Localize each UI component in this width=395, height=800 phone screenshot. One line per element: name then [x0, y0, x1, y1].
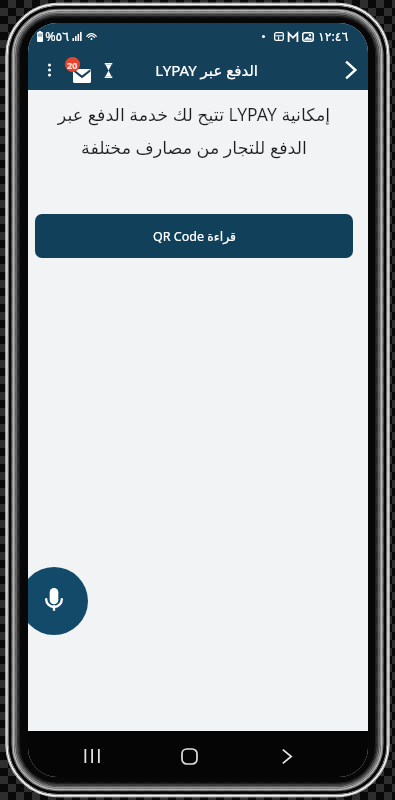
staticText: قراءة QR Code	[152, 228, 236, 245]
button[interactable]: History	[94, 56, 122, 84]
staticText: ٥٦%	[45, 28, 69, 45]
staticText: الدفع عبر LYPAY	[155, 60, 258, 80]
button[interactable]: Back	[273, 742, 301, 770]
staticText: 20	[67, 59, 78, 71]
button[interactable]: Back	[334, 53, 368, 87]
button[interactable]: More options	[36, 57, 62, 83]
button[interactable]: Voice search	[28, 567, 88, 635]
button[interactable]: Home	[175, 742, 203, 770]
button[interactable]: قراءة QR Code	[35, 214, 353, 258]
staticText: ١٢:٤٦	[318, 28, 349, 45]
button[interactable]: Recent apps	[77, 742, 105, 770]
staticText: إمكانية LYPAY تتيح لك خدمة الدفع عبر الد…	[32, 102, 356, 159]
button[interactable]: Messages	[62, 54, 94, 86]
